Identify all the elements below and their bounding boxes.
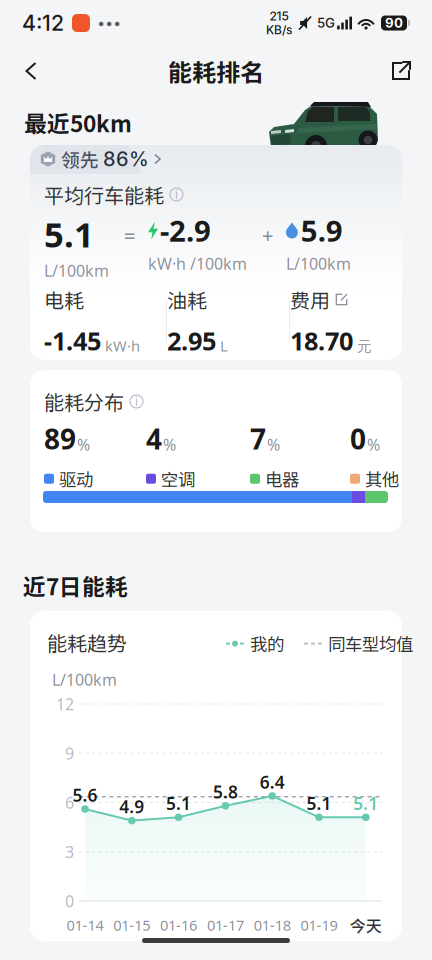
staticText: 89 [44, 420, 76, 457]
staticText: 5.1 [353, 792, 378, 815]
staticText: i [135, 394, 138, 409]
staticText: 6 [65, 792, 74, 813]
staticText: KB/s [266, 22, 292, 37]
staticText: % [267, 434, 280, 455]
button[interactable]: Share [379, 49, 423, 93]
staticText: 能耗趋势 [47, 628, 127, 657]
staticText: -2.9 [160, 211, 211, 250]
staticText: % [367, 434, 380, 455]
staticText: 最近50km [24, 106, 132, 139]
staticText: 费用 [290, 285, 330, 314]
staticText: 领先 [61, 145, 99, 172]
staticText: + [262, 222, 273, 249]
staticText: 90 [385, 15, 403, 31]
staticText: 今天 [350, 913, 382, 937]
staticText: 能耗分布 [44, 387, 124, 416]
staticText: 驱动 [59, 466, 93, 491]
staticText: 6.4 [260, 770, 285, 793]
staticText: 平均行车能耗 [44, 180, 164, 209]
staticText: 12 [56, 693, 74, 715]
staticText: 我的 [250, 631, 284, 656]
staticText: 01-19 [300, 915, 337, 935]
staticText: 5.9 [301, 211, 343, 250]
staticText: ••• [97, 14, 121, 32]
staticText: 3 [65, 841, 74, 862]
staticText: % [163, 434, 176, 455]
staticText: kW·h [105, 336, 140, 356]
staticText: 4.9 [119, 795, 144, 818]
staticText: kW·h /100km [148, 253, 247, 274]
staticText: % [77, 434, 90, 455]
staticText: 5.1 [44, 211, 94, 257]
staticText: 5.1 [306, 792, 331, 815]
staticText: 4 [146, 420, 162, 457]
staticText: 7 [250, 420, 266, 457]
staticText: 同车型均值 [328, 631, 413, 656]
staticText: 18.70 [290, 324, 353, 358]
staticText: 能耗排名 [168, 54, 264, 88]
staticText: 01-16 [160, 915, 197, 935]
staticText: 01-14 [66, 915, 103, 935]
button[interactable]: Back [9, 49, 53, 93]
staticText: 0 [65, 890, 74, 912]
staticText: 86% [103, 147, 149, 171]
staticText: 0 [350, 420, 366, 457]
staticText: 近7日能耗 [23, 569, 128, 602]
staticText: i [175, 187, 178, 202]
staticText: = [124, 222, 135, 249]
staticText: 5G [317, 15, 335, 31]
staticText: L [220, 336, 228, 356]
staticText: 5.8 [213, 780, 238, 803]
staticText: 4:12 [22, 10, 64, 36]
staticText: 01-15 [113, 915, 150, 935]
staticText: 5.1 [166, 792, 191, 815]
staticText: 215 [270, 9, 289, 23]
button[interactable]: 领先 [30, 145, 142, 174]
staticText: 2.95 [167, 324, 216, 358]
staticText: 电耗 [44, 285, 84, 314]
staticText: 01-17 [207, 915, 244, 935]
staticText: 01-18 [254, 915, 291, 935]
staticText: L/100km [44, 260, 109, 281]
staticText: 其他 [365, 466, 399, 491]
staticText: 空调 [161, 466, 195, 491]
staticText: 9 [65, 743, 74, 764]
staticText: 5.6 [72, 784, 97, 807]
staticText: L/100km [52, 669, 117, 690]
staticText: 电器 [265, 466, 299, 491]
staticText: L/100km [286, 253, 351, 274]
staticText: -1.45 [44, 324, 101, 358]
staticText: 油耗 [167, 285, 207, 314]
staticText: 元 [357, 338, 372, 356]
